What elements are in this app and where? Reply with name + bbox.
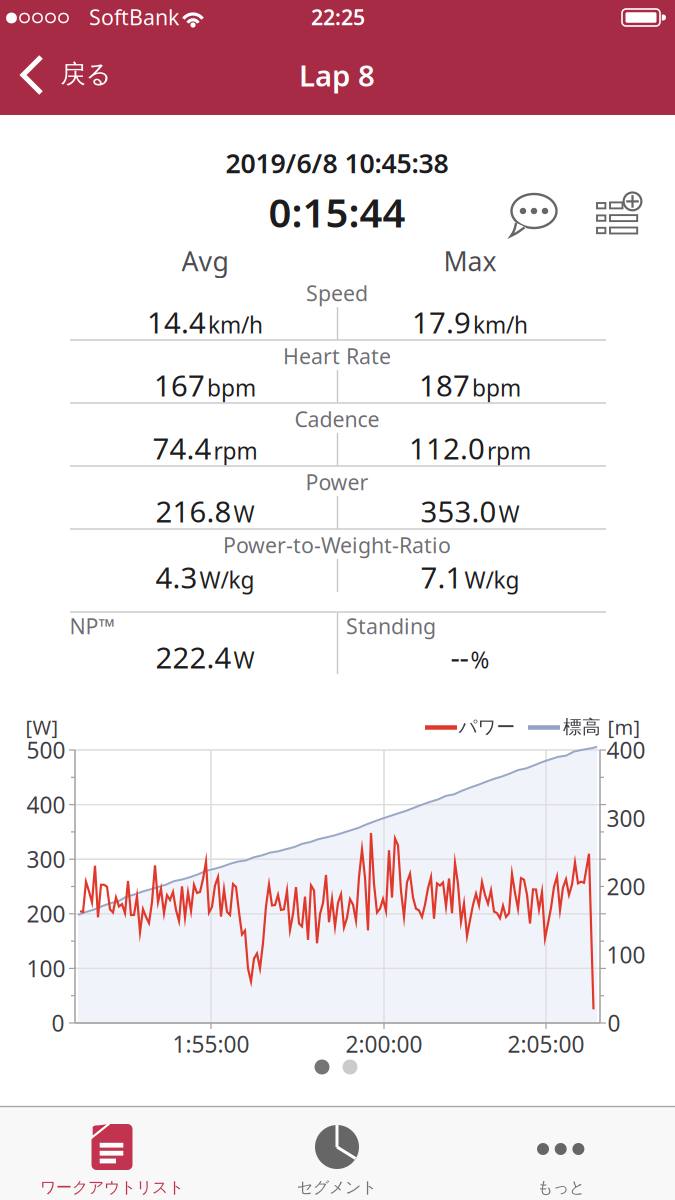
button[interactable]: セグメント — [237, 1107, 437, 1200]
staticText: 17.9 — [412, 302, 471, 341]
staticText: 400 — [606, 735, 645, 765]
staticText: rpm — [213, 435, 257, 466]
button[interactable] — [589, 189, 647, 243]
staticText: 300 — [26, 844, 65, 874]
staticText: W — [498, 498, 519, 529]
staticText: W/kg — [464, 564, 519, 595]
staticText: Speed — [306, 279, 368, 307]
staticText: Max — [443, 243, 496, 279]
staticText: 14.4 — [147, 302, 206, 341]
staticText: Power-to-Weight-Ratio — [223, 531, 451, 559]
staticText: 7.1 — [420, 557, 462, 596]
staticText: [m] — [607, 714, 640, 740]
staticText: bpm — [472, 372, 521, 403]
staticText: Power — [305, 468, 368, 496]
staticText: 戻る — [60, 58, 111, 89]
staticText: 2019/6/8 10:45:38 — [225, 145, 448, 181]
staticText: 2:05:00 — [507, 1029, 584, 1059]
staticText: SoftBank — [89, 3, 179, 31]
staticText: 100 — [26, 953, 65, 983]
staticText: セグメント — [297, 1178, 377, 1197]
staticText: NP™ — [69, 612, 114, 640]
staticText: もっと — [537, 1178, 585, 1197]
staticText: 0:15:44 — [268, 185, 405, 238]
staticText: W — [233, 498, 254, 529]
staticText: 4.3 — [155, 557, 197, 596]
staticText: Avg — [181, 243, 228, 279]
staticText: Lap 8 — [299, 55, 375, 94]
staticText: 112.0 — [409, 428, 485, 467]
button[interactable]: ワークアウトリスト — [12, 1107, 212, 1200]
staticText: 353.0 — [420, 491, 496, 530]
staticText: rpm — [487, 435, 531, 466]
staticText: -- — [450, 637, 468, 676]
staticText: 74.4 — [152, 428, 211, 467]
staticText: 300 — [606, 803, 645, 833]
staticText: km/h — [473, 309, 528, 340]
staticText: 標高 — [563, 715, 601, 738]
staticText: W — [233, 644, 254, 675]
staticText: [W] — [25, 714, 58, 740]
button[interactable]: 戻る — [10, 50, 130, 100]
staticText: 22:25 — [311, 3, 365, 31]
staticText: 200 — [606, 871, 645, 901]
staticText: bpm — [207, 372, 256, 403]
staticText: 500 — [26, 735, 65, 765]
staticText: 0 — [51, 1008, 64, 1038]
staticText: 167 — [154, 365, 205, 404]
staticText: Standing — [346, 612, 436, 640]
staticText: 187 — [419, 365, 470, 404]
staticText: W/kg — [199, 564, 254, 595]
button[interactable] — [504, 185, 564, 243]
staticText: 400 — [26, 789, 65, 820]
staticText: 0 — [607, 1008, 620, 1038]
staticText: Heart Rate — [283, 342, 391, 370]
staticText: km/h — [208, 309, 263, 340]
staticText: 100 — [606, 940, 645, 970]
staticText: パワー — [458, 715, 515, 738]
staticText: Cadence — [294, 405, 379, 433]
button[interactable]: もっと — [461, 1107, 661, 1200]
staticText: 216.8 — [155, 491, 231, 530]
staticText: ワークアウトリスト — [40, 1178, 184, 1197]
staticText: 2:00:00 — [345, 1029, 422, 1059]
staticText: 1:55:00 — [172, 1029, 249, 1059]
staticText: 200 — [26, 899, 65, 929]
staticText: 222.4 — [155, 637, 231, 676]
staticText: % — [470, 644, 489, 675]
